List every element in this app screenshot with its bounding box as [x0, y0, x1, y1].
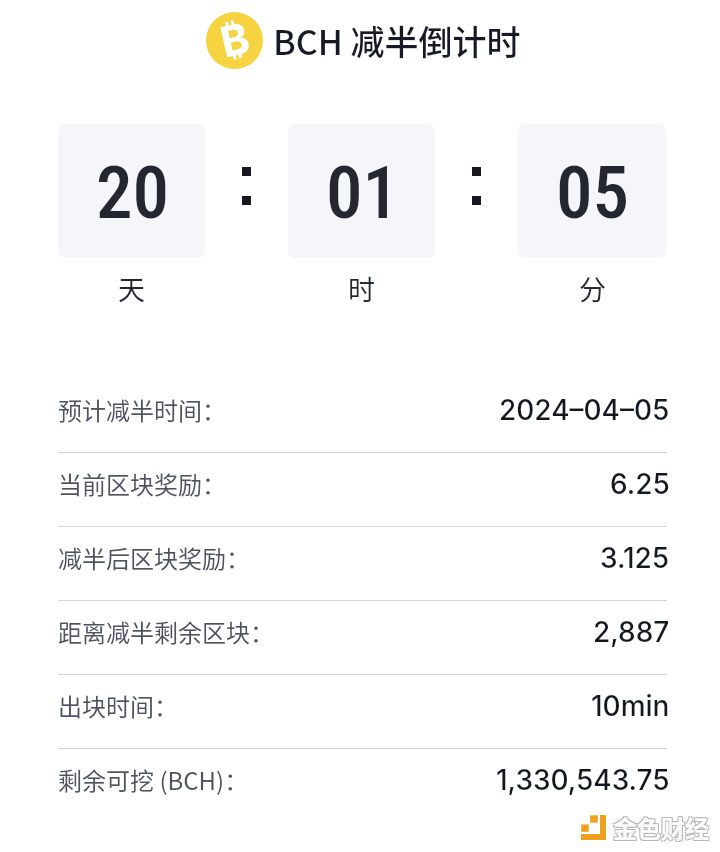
staticText: 时	[348, 269, 375, 308]
staticText: 金色财经	[613, 810, 709, 845]
staticText: 金色财经	[614, 809, 710, 844]
button[interactable]: 距离减半剩余区块：	[58, 601, 667, 674]
staticText: 1,330,543.75	[496, 763, 670, 797]
other: Bitcoin Cash	[206, 12, 263, 69]
staticText: 出块时间：	[58, 688, 178, 723]
button[interactable]: 05	[518, 124, 666, 258]
button[interactable]: 预计减半时间：	[58, 379, 667, 452]
staticText: ₿	[216, 12, 254, 67]
staticText: 05	[556, 150, 630, 236]
button[interactable]: 减半后区块奖励：	[58, 527, 667, 600]
staticText: 2024–04–05	[499, 393, 670, 427]
staticText: 01	[326, 150, 400, 236]
staticText: 距离减半剩余区块：	[58, 614, 274, 649]
staticText: 金色财经	[612, 811, 708, 846]
staticText: 当前区块奖励：	[58, 466, 226, 501]
staticText: 金色财经	[614, 811, 710, 846]
staticText: 金色财经	[612, 809, 708, 844]
button[interactable]: 当前区块奖励：	[58, 453, 667, 526]
staticText: 3.125	[600, 541, 670, 575]
staticText: BCH 减半倒计时	[273, 16, 521, 65]
staticText: 分	[579, 269, 606, 308]
staticText: 剩余可挖 (BCH)：	[58, 762, 249, 797]
staticText: 2,887	[593, 615, 670, 649]
button[interactable]: 20	[58, 124, 205, 258]
staticText: 20	[96, 150, 170, 236]
staticText: 预计减半时间：	[58, 392, 226, 427]
staticText: 减半后区块奖励：	[58, 540, 250, 575]
staticText: 天	[118, 269, 145, 308]
staticText: 6.25	[610, 467, 670, 501]
button[interactable]: 出块时间：	[58, 675, 667, 748]
button[interactable]: 剩余可挖 (BCH)：	[58, 749, 667, 822]
staticText: 10min	[591, 689, 670, 723]
button[interactable]: 01	[288, 124, 435, 258]
